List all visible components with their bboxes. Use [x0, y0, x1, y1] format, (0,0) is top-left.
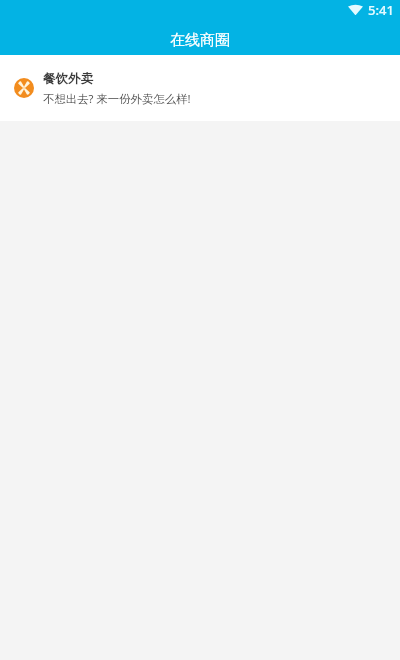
- other: Wi-Fi signal: [348, 5, 363, 15]
- other: Food delivery: [14, 78, 34, 98]
- staticText: 5:41: [368, 1, 394, 19]
- staticText: 在线商圈: [170, 31, 230, 50]
- staticText: 餐饮外卖: [43, 71, 93, 87]
- staticText: 不想出去? 来一份外卖怎么样!: [43, 91, 191, 107]
- button[interactable]: Food delivery: [0, 55, 400, 121]
